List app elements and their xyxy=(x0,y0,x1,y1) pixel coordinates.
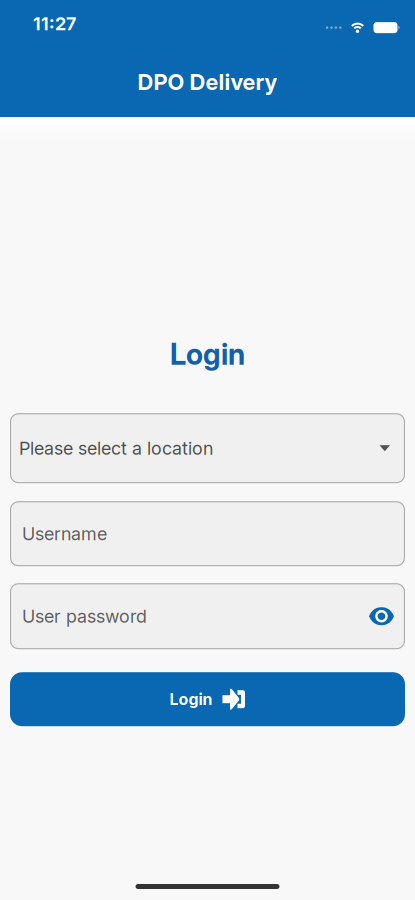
staticText: DPO Delivery xyxy=(137,69,277,95)
button[interactable]: Login xyxy=(10,672,405,726)
button[interactable]: Please select a location xyxy=(10,413,405,483)
button[interactable]: Show password xyxy=(369,607,394,625)
staticText: Login xyxy=(169,690,212,709)
staticText: Login xyxy=(170,337,245,371)
staticText: Username xyxy=(22,523,107,544)
staticText: 11:27 xyxy=(33,13,76,34)
staticText: User password xyxy=(22,606,147,627)
button[interactable]: Username xyxy=(10,501,405,566)
button[interactable]: User password xyxy=(10,583,405,649)
staticText: Please select a location xyxy=(19,438,213,459)
